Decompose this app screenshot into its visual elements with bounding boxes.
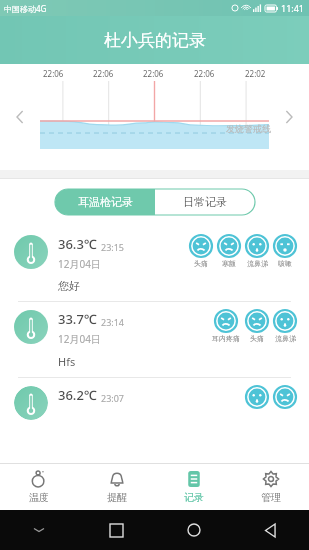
staticText: 12月04日 <box>58 257 101 271</box>
button[interactable]: Symptom <box>274 235 296 257</box>
staticText: 头痛 <box>194 259 208 268</box>
button[interactable]: Back <box>232 510 309 550</box>
button[interactable]: 36.3℃ <box>0 227 309 301</box>
button[interactable]: Recents <box>78 510 155 550</box>
staticText: 流鼻涕 <box>247 259 268 268</box>
button[interactable]: Symptom <box>246 386 268 408</box>
staticText: 12月04日 <box>58 332 101 346</box>
button[interactable]: Previous <box>8 105 32 129</box>
staticText: 23:15 <box>101 241 125 253</box>
staticText: 23:14 <box>101 316 125 328</box>
staticText: 耳内疼痛 <box>212 334 240 343</box>
staticText: 23:07 <box>101 392 125 404</box>
button[interactable]: 日常记录 <box>155 189 255 215</box>
staticText: 温度 <box>29 491 49 504</box>
staticText: 36.2℃ <box>58 386 97 404</box>
button[interactable]: Symptom <box>274 386 296 408</box>
staticText: 11:41 <box>281 2 305 14</box>
button[interactable]: Symptom <box>274 310 296 332</box>
staticText: 记录 <box>184 491 204 504</box>
staticText: 22:02 <box>245 68 266 79</box>
button[interactable]: 温度 <box>0 464 78 510</box>
button[interactable]: Home <box>155 510 232 550</box>
staticText: 22:06 <box>43 68 64 79</box>
button[interactable]: Symptom <box>215 310 237 332</box>
staticText: 22:06 <box>194 68 215 79</box>
staticText: 发烧警戒线 <box>226 123 271 134</box>
staticText: 寒颤 <box>222 259 236 268</box>
staticText: 您好 <box>58 279 80 293</box>
button[interactable]: Symptom <box>190 235 212 257</box>
staticText: 杜小兵的记录 <box>104 30 206 51</box>
staticText: 管理 <box>261 491 281 504</box>
button[interactable]: Symptom <box>218 235 240 257</box>
staticText: 耳温枪记录 <box>78 195 133 209</box>
button[interactable]: Symptom <box>246 310 268 332</box>
button[interactable]: 33.7℃ <box>0 302 309 377</box>
button[interactable]: 记录 <box>155 464 232 510</box>
staticText: 36.3℃ <box>58 235 97 253</box>
staticText: 22:06 <box>143 68 164 79</box>
button[interactable]: Next <box>277 105 301 129</box>
staticText: 日常记录 <box>183 195 227 209</box>
staticText: 中国移动4G <box>4 3 47 14</box>
staticText: 22:06 <box>93 68 114 79</box>
button[interactable]: Symptom <box>246 235 268 257</box>
staticText: 咳嗽 <box>278 259 292 268</box>
button[interactable]: 管理 <box>232 464 309 510</box>
staticText: 33.7℃ <box>58 310 97 328</box>
staticText: 头痛 <box>250 334 264 343</box>
staticText: 提醒 <box>107 491 127 504</box>
staticText: 流鼻涕 <box>275 334 296 343</box>
button[interactable]: 耳温枪记录 <box>55 189 155 215</box>
button[interactable]: 36.2℃ <box>0 378 309 420</box>
button[interactable]: 提醒 <box>78 464 155 510</box>
staticText: Hfs <box>58 354 76 369</box>
